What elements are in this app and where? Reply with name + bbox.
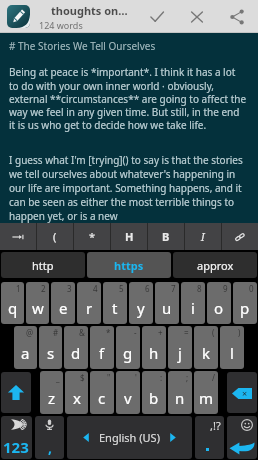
button[interactable]: 7: [155, 282, 179, 324]
button[interactable]: ": [90, 371, 114, 414]
staticText: 7: [171, 283, 176, 294]
button[interactable]: *: [74, 223, 110, 250]
staticText: y: [137, 298, 145, 318]
button[interactable]: Voice input: [35, 416, 64, 459]
staticText: w: [32, 298, 44, 318]
staticText: # The Stories We Tell Ourselves: [9, 39, 156, 53]
button[interactable]: @: [14, 326, 37, 369]
staticText: 4: [93, 283, 98, 294]
button[interactable]: B: [148, 223, 184, 250]
button[interactable]: http: [1, 252, 85, 278]
staticText: a: [21, 343, 30, 363]
staticText: $: [80, 372, 85, 383]
button[interactable]: ): [220, 326, 244, 369]
staticText: H: [125, 229, 134, 244]
staticText: e: [59, 298, 68, 318]
button[interactable]: ': [116, 371, 140, 414]
button[interactable]: approx: [173, 252, 257, 278]
button[interactable]: 8: [181, 282, 205, 324]
staticText: :: [160, 372, 163, 383]
button[interactable]: =: [168, 326, 192, 369]
button[interactable]: -: [116, 326, 140, 369]
button[interactable]: ;: [168, 371, 192, 414]
button[interactable]: 0: [233, 282, 257, 324]
staticText: =: [184, 327, 189, 338]
staticText: ,: [48, 438, 52, 457]
button[interactable]: 5: [103, 282, 127, 324]
staticText: b: [149, 388, 159, 408]
button[interactable]: (: [194, 326, 218, 369]
staticText: _: [56, 372, 60, 383]
staticText: i: [191, 298, 195, 318]
staticText: Being at peace is *important*. I think i…: [9, 65, 247, 132]
staticText: 124 words: [39, 19, 83, 31]
button[interactable]: I: [185, 223, 221, 250]
button[interactable]: 3: [51, 282, 75, 324]
staticText: s: [47, 343, 55, 363]
staticText: k: [202, 343, 211, 363]
staticText: t: [112, 298, 118, 318]
button[interactable]: :: [142, 371, 166, 414]
staticText: thoughts on…: [51, 3, 128, 18]
button[interactable]: /: [194, 371, 218, 414]
staticText: 3: [67, 283, 72, 294]
button[interactable]: Save: [142, 2, 172, 32]
button[interactable]: 9: [207, 282, 231, 324]
staticText: http: [32, 258, 54, 273]
button[interactable]: (: [37, 223, 73, 250]
staticText: ': [135, 372, 137, 383]
staticText: ): [238, 327, 241, 338]
staticText: ": [107, 372, 111, 383]
button[interactable]: H: [111, 223, 147, 250]
staticText: h: [149, 343, 159, 363]
staticText: (: [212, 327, 215, 338]
button[interactable]: 6: [129, 282, 153, 324]
button[interactable]: 1: [1, 282, 24, 324]
button[interactable]: _: [40, 371, 63, 414]
button[interactable]: Share: [222, 2, 252, 32]
staticText: g: [123, 343, 133, 363]
staticText: m: [199, 388, 214, 408]
staticText: *: [106, 327, 111, 338]
button[interactable]: +: [142, 326, 166, 369]
staticText: 9: [223, 283, 228, 294]
staticText: o: [214, 298, 224, 318]
staticText: /: [212, 372, 215, 383]
button[interactable]: &: [64, 326, 88, 369]
staticText: c: [98, 388, 106, 408]
staticText: 5: [119, 283, 124, 294]
button[interactable]: Shift: [1, 372, 31, 413]
button[interactable]: 2: [26, 282, 49, 324]
button[interactable]: #: [39, 326, 62, 369]
button[interactable]: Space: [67, 416, 192, 459]
staticText: l: [230, 343, 234, 363]
staticText: #: [53, 327, 59, 338]
button[interactable]: Open note: [7, 5, 30, 28]
button[interactable]: Symbols: [1, 416, 32, 459]
button[interactable]: [222, 223, 258, 250]
staticText: approx: [197, 258, 234, 273]
staticText: x: [73, 388, 81, 408]
staticText: ×: [242, 387, 248, 399]
staticText: 123: [3, 437, 29, 457]
button[interactable]: *: [90, 326, 114, 369]
button[interactable]: 4: [77, 282, 101, 324]
button[interactable]: Punctuation: [195, 416, 224, 459]
staticText: 8: [197, 283, 202, 294]
staticText: @: [26, 327, 34, 338]
button[interactable]: https: [87, 252, 171, 278]
button[interactable]: Backspace: [227, 372, 257, 413]
staticText: d: [71, 343, 81, 363]
button[interactable]: Discard: [182, 2, 212, 32]
staticText: ;: [186, 372, 189, 383]
button[interactable]: Enter: [227, 416, 257, 459]
staticText: English (US): [99, 430, 160, 445]
button[interactable]: [0, 223, 36, 250]
staticText: f: [99, 343, 105, 363]
staticText: B: [162, 229, 170, 244]
staticText: n: [175, 388, 185, 408]
staticText: 0: [249, 283, 254, 294]
staticText: https: [114, 258, 144, 273]
button[interactable]: $: [65, 371, 88, 414]
staticText: r: [86, 298, 93, 318]
